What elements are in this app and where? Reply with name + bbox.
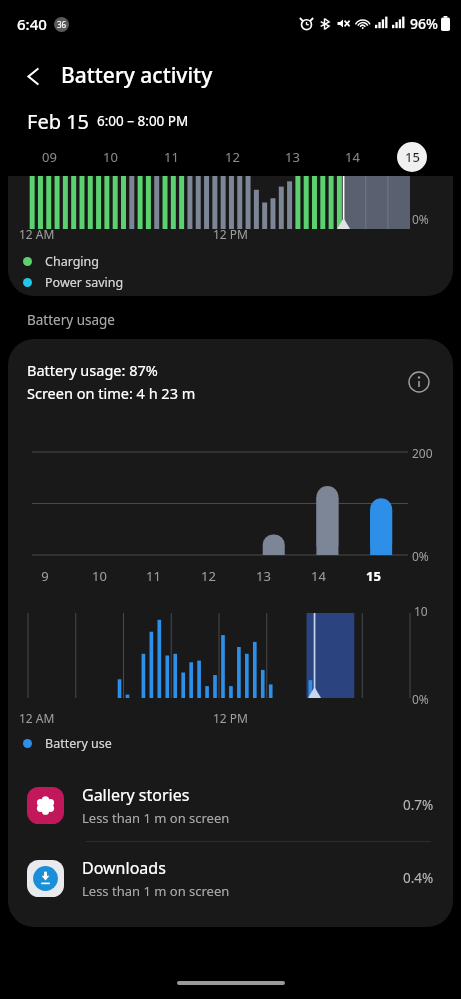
staticText: 12 [225, 148, 240, 166]
button[interactable]: 12 [202, 138, 262, 176]
staticText: Battery usage: 87% [27, 360, 158, 380]
staticText: Gallery stories [82, 784, 190, 806]
staticText: 0% [412, 211, 429, 227]
staticText: 10 [92, 567, 107, 585]
staticText: 12 PM [213, 226, 248, 242]
staticText: 14 [311, 567, 326, 585]
staticText: Feb 15 [27, 108, 90, 135]
staticText: Power saving [45, 274, 124, 291]
staticText: 0% [412, 691, 429, 707]
staticText: Less than 1 m on screen [82, 809, 230, 827]
staticText: 6:00 – 8:00 PM [97, 112, 189, 130]
staticText: 6:40 [17, 14, 47, 34]
staticText: Downloads [82, 857, 166, 879]
staticText: 9 [41, 567, 49, 585]
button[interactable]: Downloads [8, 842, 453, 914]
button[interactable]: 10 [80, 138, 141, 176]
staticText: 09 [42, 148, 57, 166]
staticText: 13 [256, 567, 271, 585]
staticText: Battery activity [61, 61, 213, 90]
staticText: 14 [345, 148, 360, 166]
staticText: 36 [57, 19, 67, 30]
staticText: 12 AM [19, 710, 55, 726]
staticText: 12 PM [213, 710, 248, 726]
staticText: 12 AM [19, 226, 55, 242]
staticText: 96% [410, 14, 438, 33]
staticText: 15 [366, 567, 381, 585]
staticText: 10 [103, 148, 118, 166]
button[interactable]: Info [402, 365, 436, 399]
staticText: Less than 1 m on screen [82, 882, 230, 900]
button[interactable]: 15 [382, 138, 442, 176]
button[interactable]: Back [11, 54, 55, 98]
staticText: 0.7% [403, 796, 434, 814]
staticText: Charging [45, 253, 100, 270]
staticText: 10 [414, 603, 428, 619]
staticText: 0.4% [403, 869, 434, 887]
staticText: 12 [201, 567, 216, 585]
staticText: Screen on time: 4 h 23 m [27, 383, 196, 403]
staticText: 200 [412, 445, 433, 461]
staticText: Battery usage [27, 311, 115, 329]
button[interactable]: 11 [141, 138, 202, 176]
staticText: 0% [412, 548, 429, 564]
staticText: 15 [405, 148, 420, 166]
staticText: 13 [285, 148, 300, 166]
button[interactable]: 14 [322, 138, 382, 176]
button[interactable]: 13 [262, 138, 322, 176]
button[interactable]: 09 [19, 138, 80, 176]
staticText: 11 [164, 148, 179, 166]
staticText: Battery use [45, 735, 112, 752]
staticText: 11 [146, 567, 161, 585]
button[interactable]: Gallery stories [8, 769, 453, 841]
